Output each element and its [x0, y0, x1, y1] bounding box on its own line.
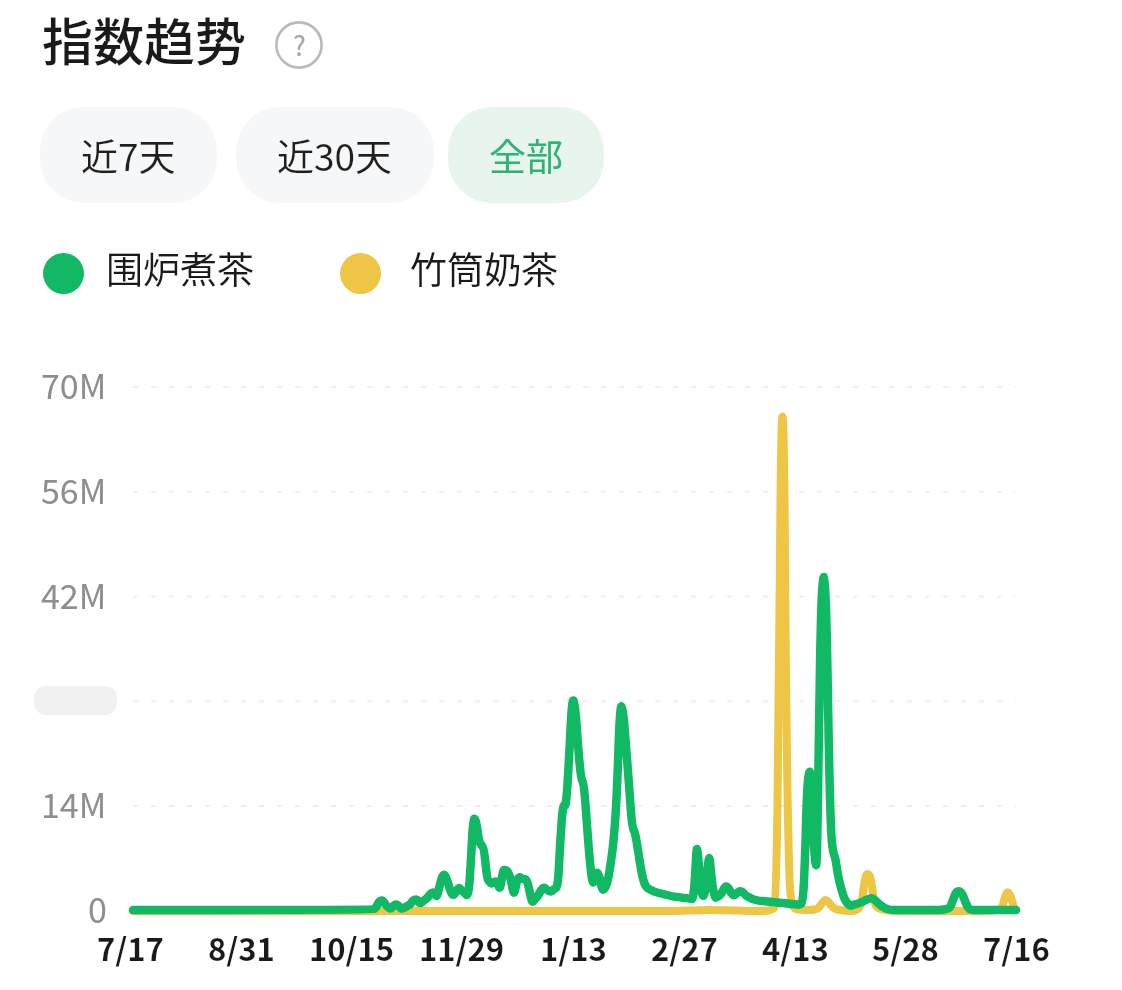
staticText: 5/28: [872, 925, 939, 970]
staticText: 围炉煮茶: [106, 241, 254, 295]
staticText: 0: [88, 884, 107, 933]
button[interactable]: 帮助: [274, 20, 324, 70]
staticText: 4/13: [762, 925, 829, 970]
staticText: 近30天: [277, 128, 393, 182]
staticText: 10/15: [309, 925, 395, 970]
staticText: 竹筒奶茶: [410, 241, 558, 295]
staticText: 全部: [489, 128, 563, 182]
staticText: 14M: [41, 779, 107, 828]
staticText: 42M: [41, 570, 107, 619]
staticText: ?: [293, 25, 306, 64]
staticText: 8/31: [208, 925, 275, 970]
button[interactable]: 全部: [448, 107, 604, 203]
button[interactable]: 近7天: [40, 107, 217, 203]
staticText: 2/27: [651, 925, 718, 970]
staticText: 1/13: [540, 925, 607, 970]
button[interactable]: 近30天: [236, 107, 434, 203]
staticText: 70M: [41, 360, 107, 409]
staticText: 近7天: [81, 128, 176, 182]
staticText: 28M: [41, 674, 107, 723]
staticText: 11/29: [419, 925, 505, 970]
staticText: 7/16: [983, 925, 1050, 970]
staticText: 7/17: [97, 925, 164, 970]
staticText: 56M: [41, 465, 107, 514]
staticText: 指数趋势: [42, 2, 247, 76]
